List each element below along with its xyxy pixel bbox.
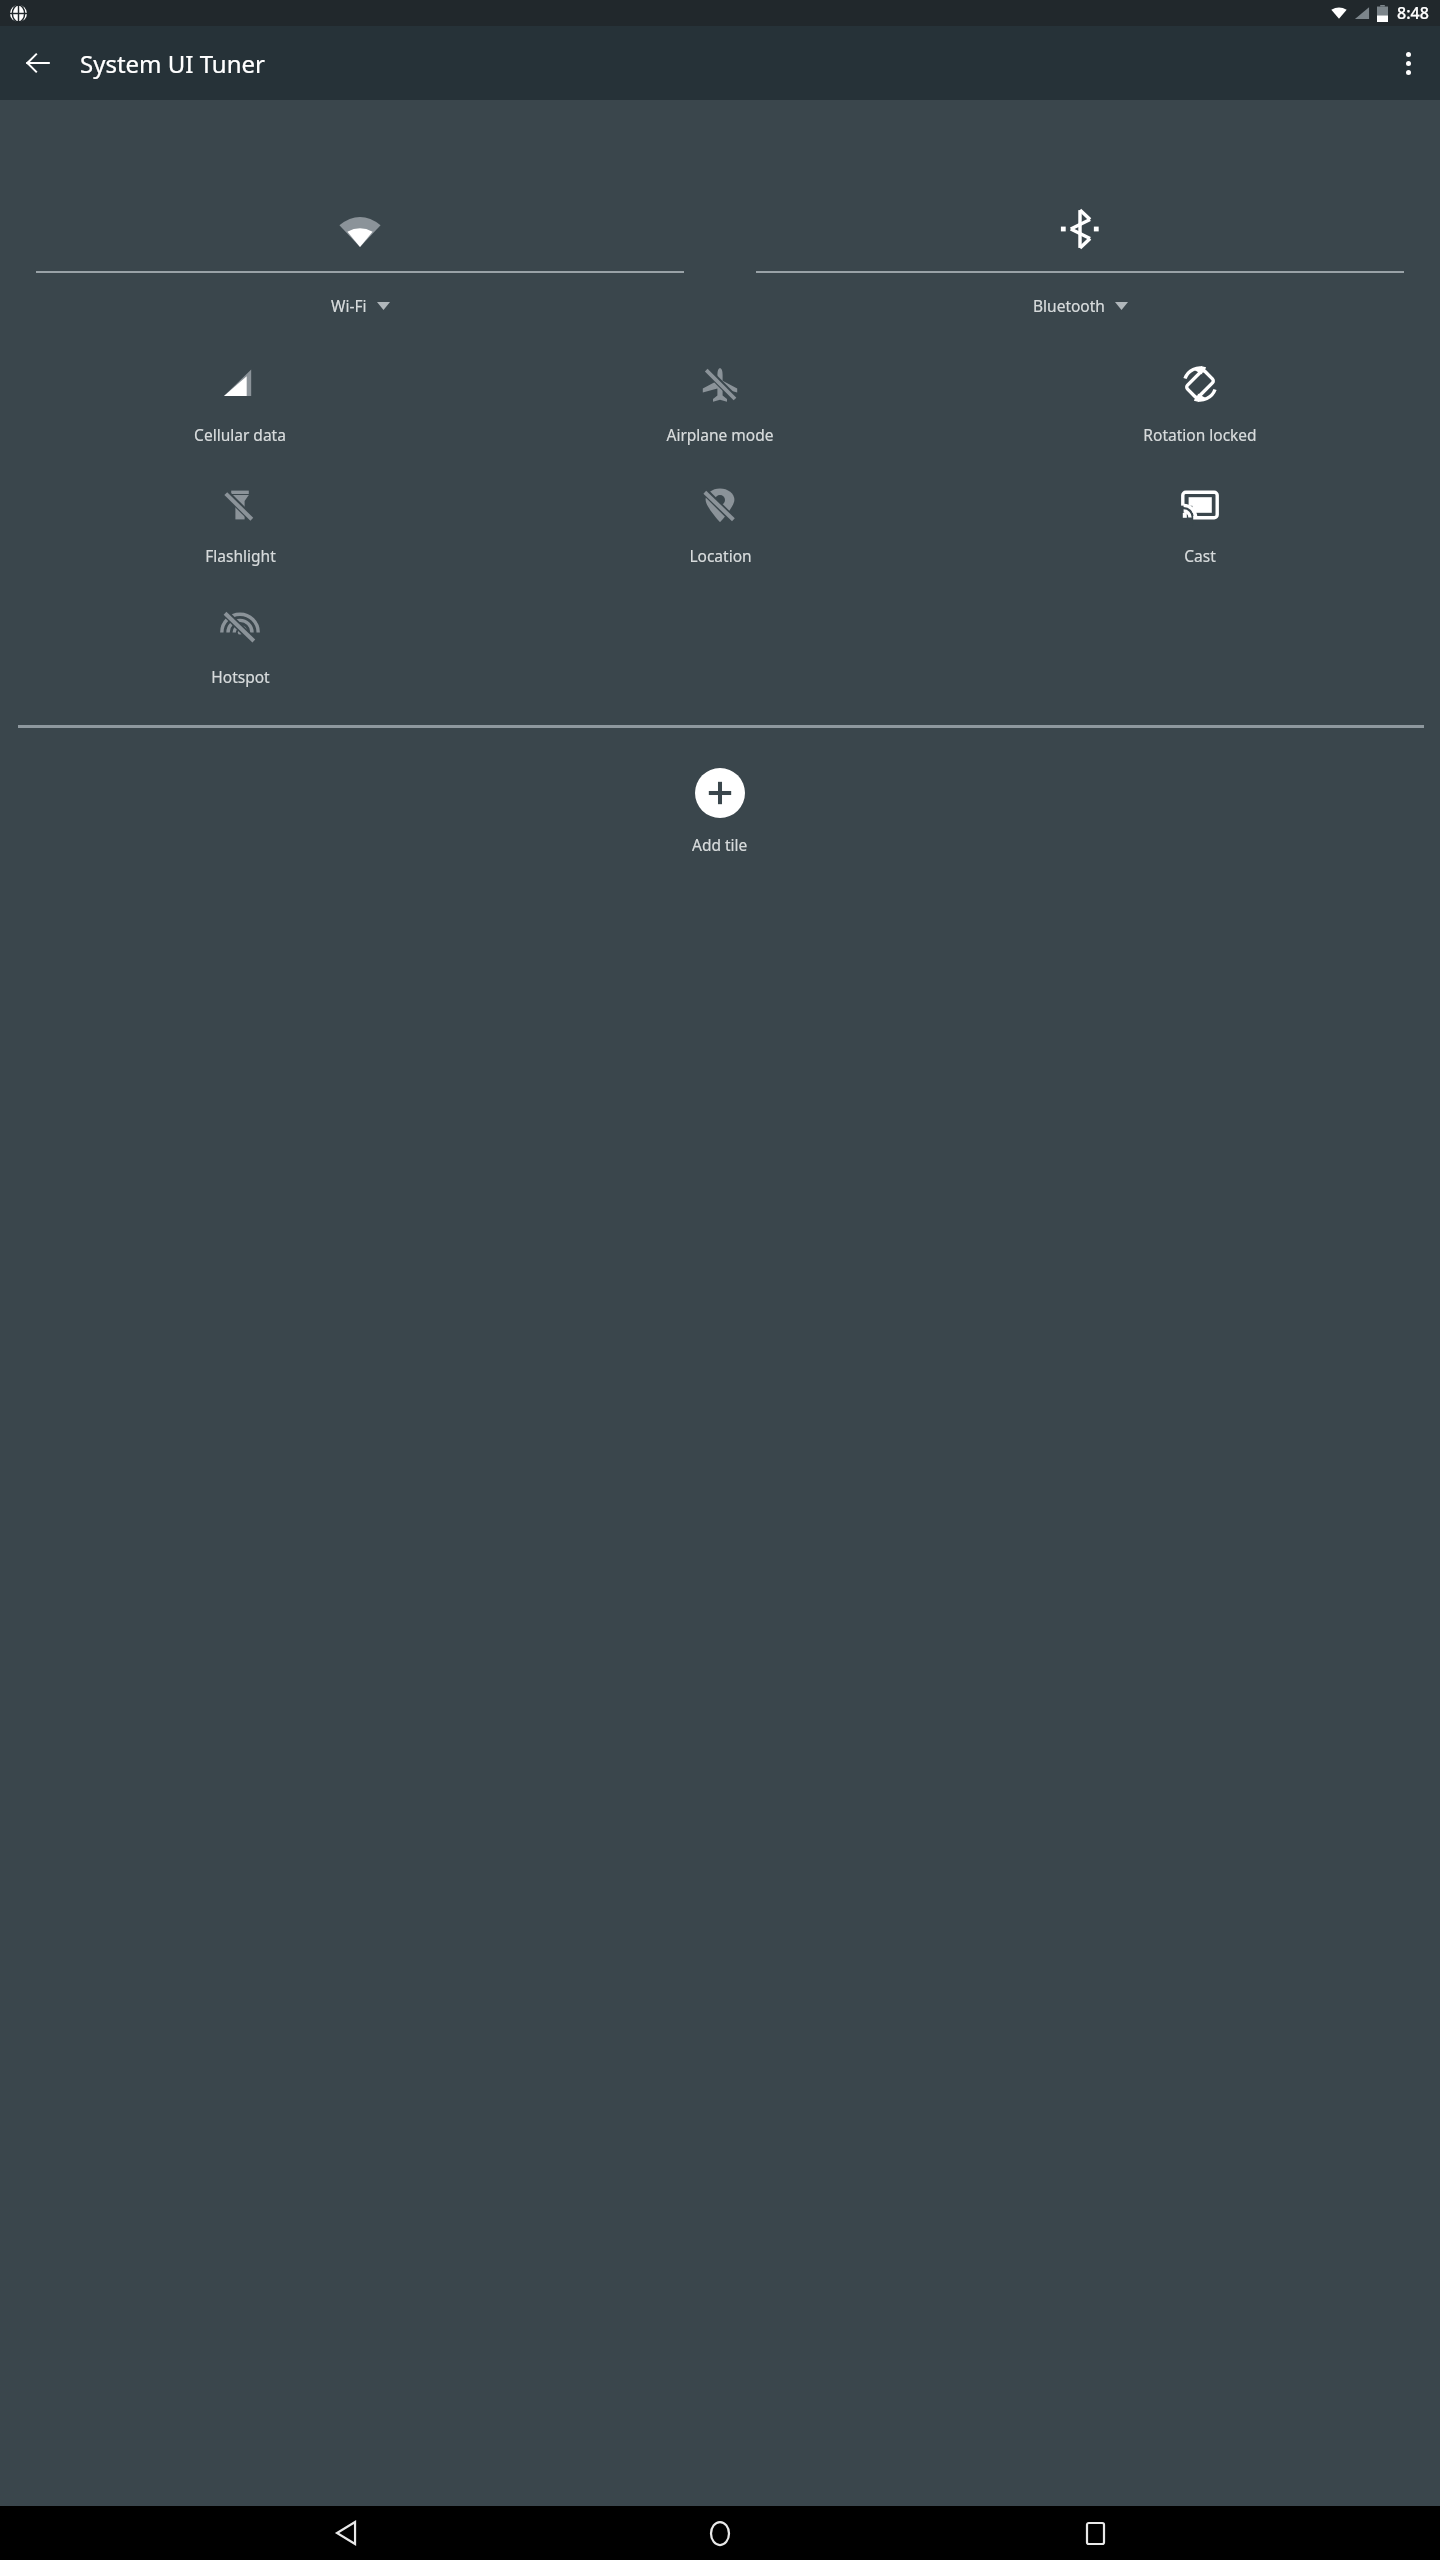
button[interactable]: Home [691,2506,749,2560]
button[interactable]: Rotation locked [960,358,1440,449]
button[interactable]: Hotspot [0,600,480,691]
button[interactable]: More options [1384,39,1432,87]
button[interactable]: Flashlight [0,479,480,570]
button[interactable]: Bluetooth [720,208,1440,316]
button[interactable]: Back [14,39,62,87]
button[interactable]: Back [317,2506,375,2560]
staticText: Location [689,545,752,566]
staticText: Rotation locked [1143,424,1257,445]
button[interactable]: Add tile [0,764,1440,859]
button[interactable]: Location [480,479,960,570]
staticText: Add tile [692,834,748,855]
staticText: Hotspot [211,666,270,687]
staticText: Flashlight [205,545,276,566]
staticText: Bluetooth [1033,295,1105,316]
button[interactable]: Wi-Fi [0,208,720,316]
button[interactable]: Recent apps [1066,2506,1124,2560]
staticText: Cast [1184,545,1216,566]
staticText: 8:48 [1397,2,1429,24]
staticText: Wi-Fi [331,295,367,316]
staticText: System UI Tuner [80,47,265,80]
staticText: Cellular data [194,424,286,445]
button[interactable]: Cellular data [0,358,480,449]
button[interactable]: Cast [960,479,1440,570]
button[interactable]: Airplane mode [480,358,960,449]
staticText: Airplane mode [666,424,774,445]
